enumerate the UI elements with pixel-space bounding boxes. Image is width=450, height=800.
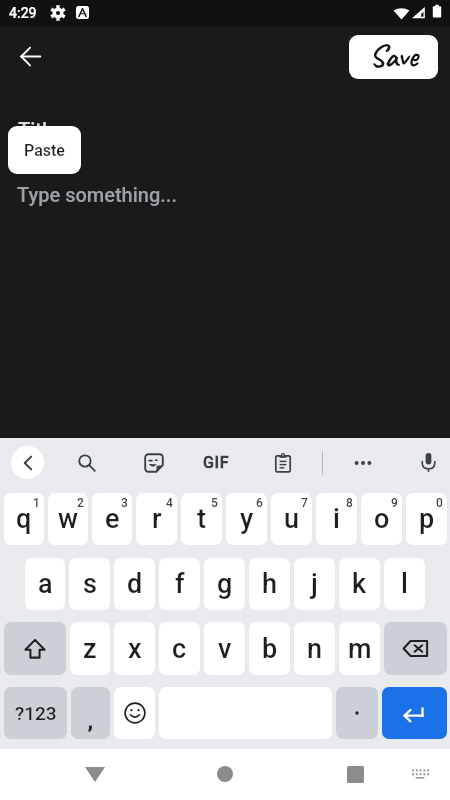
staticText: , — [88, 709, 93, 734]
button[interactable]: , — [71, 687, 110, 739]
button[interactable]: u — [271, 493, 312, 545]
staticText: v — [218, 633, 232, 665]
button[interactable]: Clipboard — [266, 446, 299, 479]
staticText: w — [58, 503, 79, 535]
staticText: l — [401, 568, 408, 600]
staticText: ?123 — [15, 702, 57, 724]
button[interactable]: Keyboard — [400, 754, 440, 794]
staticText: 3 — [121, 496, 128, 510]
staticText: i — [333, 503, 340, 535]
staticText: e — [105, 503, 120, 535]
button[interactable]: d — [114, 558, 155, 610]
button[interactable]: Shift — [4, 622, 66, 675]
staticText: q — [16, 503, 32, 535]
staticText: h — [262, 568, 278, 600]
staticText: r — [152, 503, 162, 535]
button[interactable]: Back — [75, 754, 115, 794]
button[interactable] — [336, 687, 378, 739]
button[interactable]: f — [159, 558, 200, 610]
staticText: 4:29 — [9, 5, 37, 21]
staticText: 5 — [211, 496, 218, 510]
staticText: n — [307, 633, 323, 665]
staticText: d — [127, 568, 143, 600]
button[interactable]: ?123 — [4, 687, 67, 739]
button[interactable]: j — [294, 558, 335, 610]
staticText: t — [197, 503, 206, 535]
staticText: o — [374, 503, 390, 535]
staticText: Save — [369, 36, 418, 75]
button[interactable]: i — [316, 493, 357, 545]
button[interactable]: x — [114, 622, 155, 675]
button[interactable]: g — [204, 558, 245, 610]
button[interactable]: More options — [346, 446, 379, 479]
button[interactable]: Voice input — [412, 446, 445, 479]
staticText: 7 — [301, 496, 308, 510]
button[interactable]: n — [294, 622, 335, 675]
button[interactable]: Home — [205, 754, 245, 794]
button[interactable]: Recents — [335, 754, 375, 794]
staticText: b — [262, 633, 278, 665]
button[interactable]: p — [406, 493, 447, 545]
staticText: y — [240, 503, 254, 535]
button[interactable]: s — [69, 558, 110, 610]
staticText: c — [172, 633, 187, 665]
button[interactable]: Save — [349, 35, 438, 79]
staticText: k — [352, 568, 367, 600]
button[interactable]: w — [48, 493, 88, 545]
staticText: m — [348, 633, 372, 665]
button[interactable]: l — [384, 558, 425, 610]
staticText: GIF — [203, 453, 230, 472]
button[interactable]: a — [25, 558, 65, 610]
button[interactable]: Enter — [382, 687, 447, 739]
button[interactable]: e — [92, 493, 132, 545]
staticText: 4 — [166, 496, 173, 510]
staticText: g — [217, 568, 233, 600]
button[interactable]: h — [249, 558, 290, 610]
button[interactable]: r — [136, 493, 177, 545]
staticText: Type something... — [17, 183, 177, 206]
button[interactable]: m — [339, 622, 380, 675]
button[interactable]: Paste — [8, 126, 81, 174]
staticText: Paste — [24, 141, 65, 160]
button[interactable]: c — [159, 622, 200, 675]
button[interactable]: Search — [70, 446, 103, 479]
button[interactable]: Back — [7, 33, 54, 80]
staticText: 9 — [391, 496, 398, 510]
button[interactable]: z — [70, 622, 110, 675]
staticText: 6 — [256, 496, 263, 510]
staticText: 2 — [77, 496, 84, 510]
staticText: x — [128, 633, 142, 665]
staticText: s — [83, 568, 97, 600]
staticText: u — [284, 503, 300, 535]
staticText: 8 — [346, 496, 353, 510]
button[interactable]: GIF — [200, 446, 233, 479]
staticText: z — [83, 633, 97, 665]
button[interactable]: v — [204, 622, 245, 675]
button[interactable]: y — [226, 493, 267, 545]
button[interactable]: Backspace — [384, 622, 447, 675]
button[interactable]: o — [361, 493, 402, 545]
button[interactable]: t — [181, 493, 222, 545]
button[interactable]: q — [4, 493, 44, 545]
staticText: p — [419, 503, 435, 535]
staticText: 0 — [436, 496, 443, 510]
button[interactable]: k — [339, 558, 380, 610]
staticText: f — [175, 568, 185, 600]
staticText: 1 — [33, 496, 40, 510]
staticText: Title — [18, 118, 58, 141]
staticText: a — [38, 568, 53, 600]
button[interactable]: b — [249, 622, 290, 675]
button[interactable]: Emoji — [114, 687, 155, 739]
button[interactable]: Stickers — [137, 446, 170, 479]
staticText: j — [311, 568, 318, 600]
button[interactable]: Previous — [11, 446, 44, 479]
